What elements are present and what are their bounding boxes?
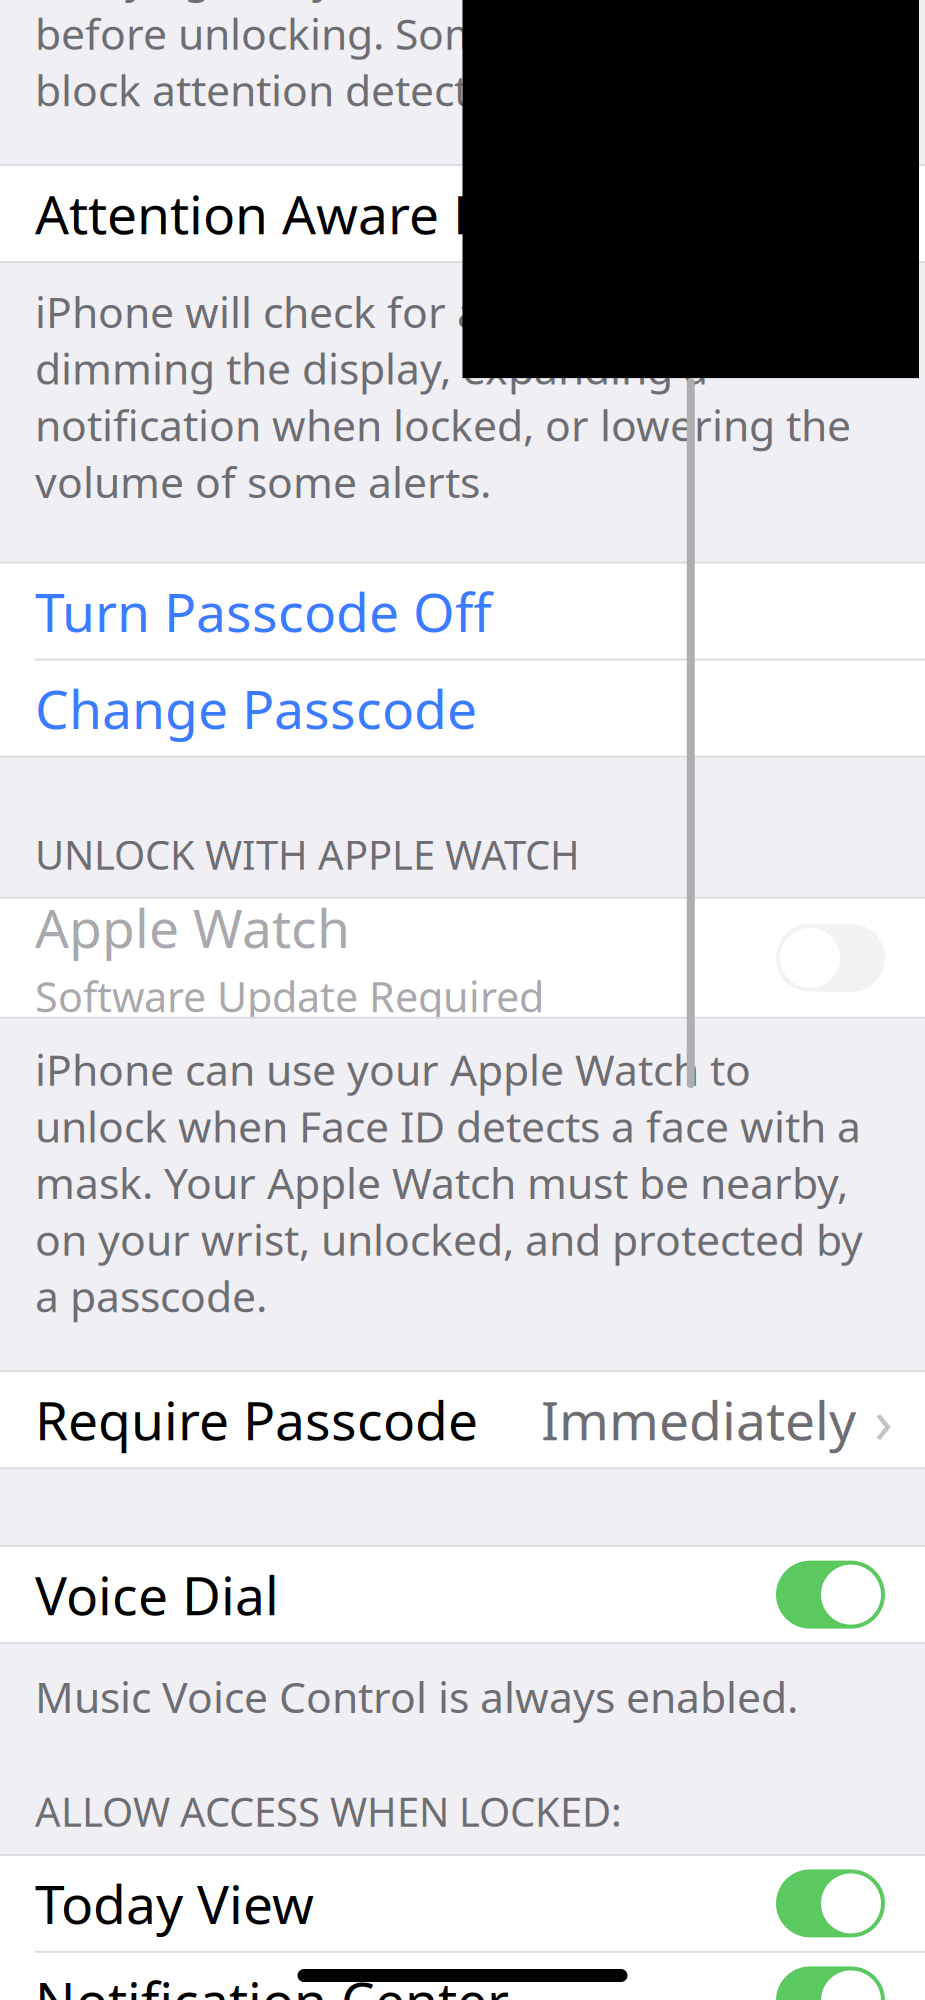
staticText: iPhone will check for attention before d… [35, 283, 851, 510]
staticText: Voice Dial [35, 1559, 279, 1630]
staticText: Software Update Required [35, 969, 544, 1024]
button[interactable]: Require Passcode [0, 1372, 925, 1467]
button[interactable]: Attention Aware Features [0, 166, 925, 261]
button[interactable]: Turn Passcode Off [0, 564, 925, 659]
button[interactable]: Notification Center [0, 1953, 925, 2000]
staticText: Change Passcode [35, 673, 477, 744]
staticText: Require Passcode [35, 1384, 478, 1455]
staticText: ALLOW ACCESS WHEN LOCKED: [35, 1785, 622, 1838]
button[interactable]: Change Passcode [0, 661, 925, 756]
staticText: Apple Watch [35, 892, 350, 963]
staticText: Today View [35, 1868, 314, 1939]
button[interactable]: Apple Watch [0, 899, 925, 1017]
staticText: Notification Center [35, 1965, 509, 2000]
button[interactable]: Voice Dial [0, 1547, 925, 1642]
staticText: Immediately [541, 1384, 856, 1455]
staticText: Turn Passcode Off [35, 576, 492, 647]
staticText: verifying that you are looking at iPhone… [35, 0, 833, 118]
staticText: Attention Aware Features [35, 178, 670, 249]
staticText: Music Voice Control is always enabled. [35, 1668, 798, 1725]
staticText: UNLOCK WITH APPLE WATCH [35, 828, 580, 881]
button[interactable]: Today View [0, 1856, 925, 1951]
staticText: iPhone can use your Apple Watch to unloc… [35, 1041, 863, 1324]
staticText: › [874, 1379, 893, 1460]
